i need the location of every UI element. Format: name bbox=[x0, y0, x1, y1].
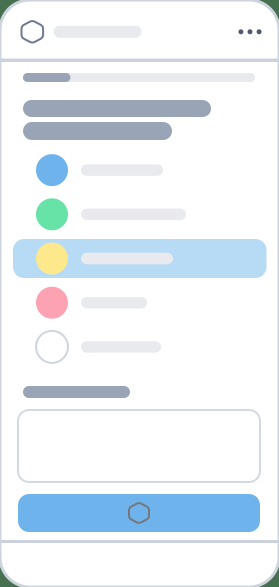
button[interactable]: Title bbox=[44, 9, 141, 54]
button[interactable] bbox=[0, 148, 266, 192]
button[interactable]: Continue bbox=[18, 494, 260, 532]
button[interactable]: Home bbox=[20, 9, 44, 54]
button[interactable]: More options bbox=[222, 9, 262, 54]
button[interactable] bbox=[0, 281, 266, 325]
button[interactable] bbox=[0, 192, 266, 236]
button[interactable] bbox=[0, 325, 266, 369]
button[interactable] bbox=[0, 236, 266, 281]
